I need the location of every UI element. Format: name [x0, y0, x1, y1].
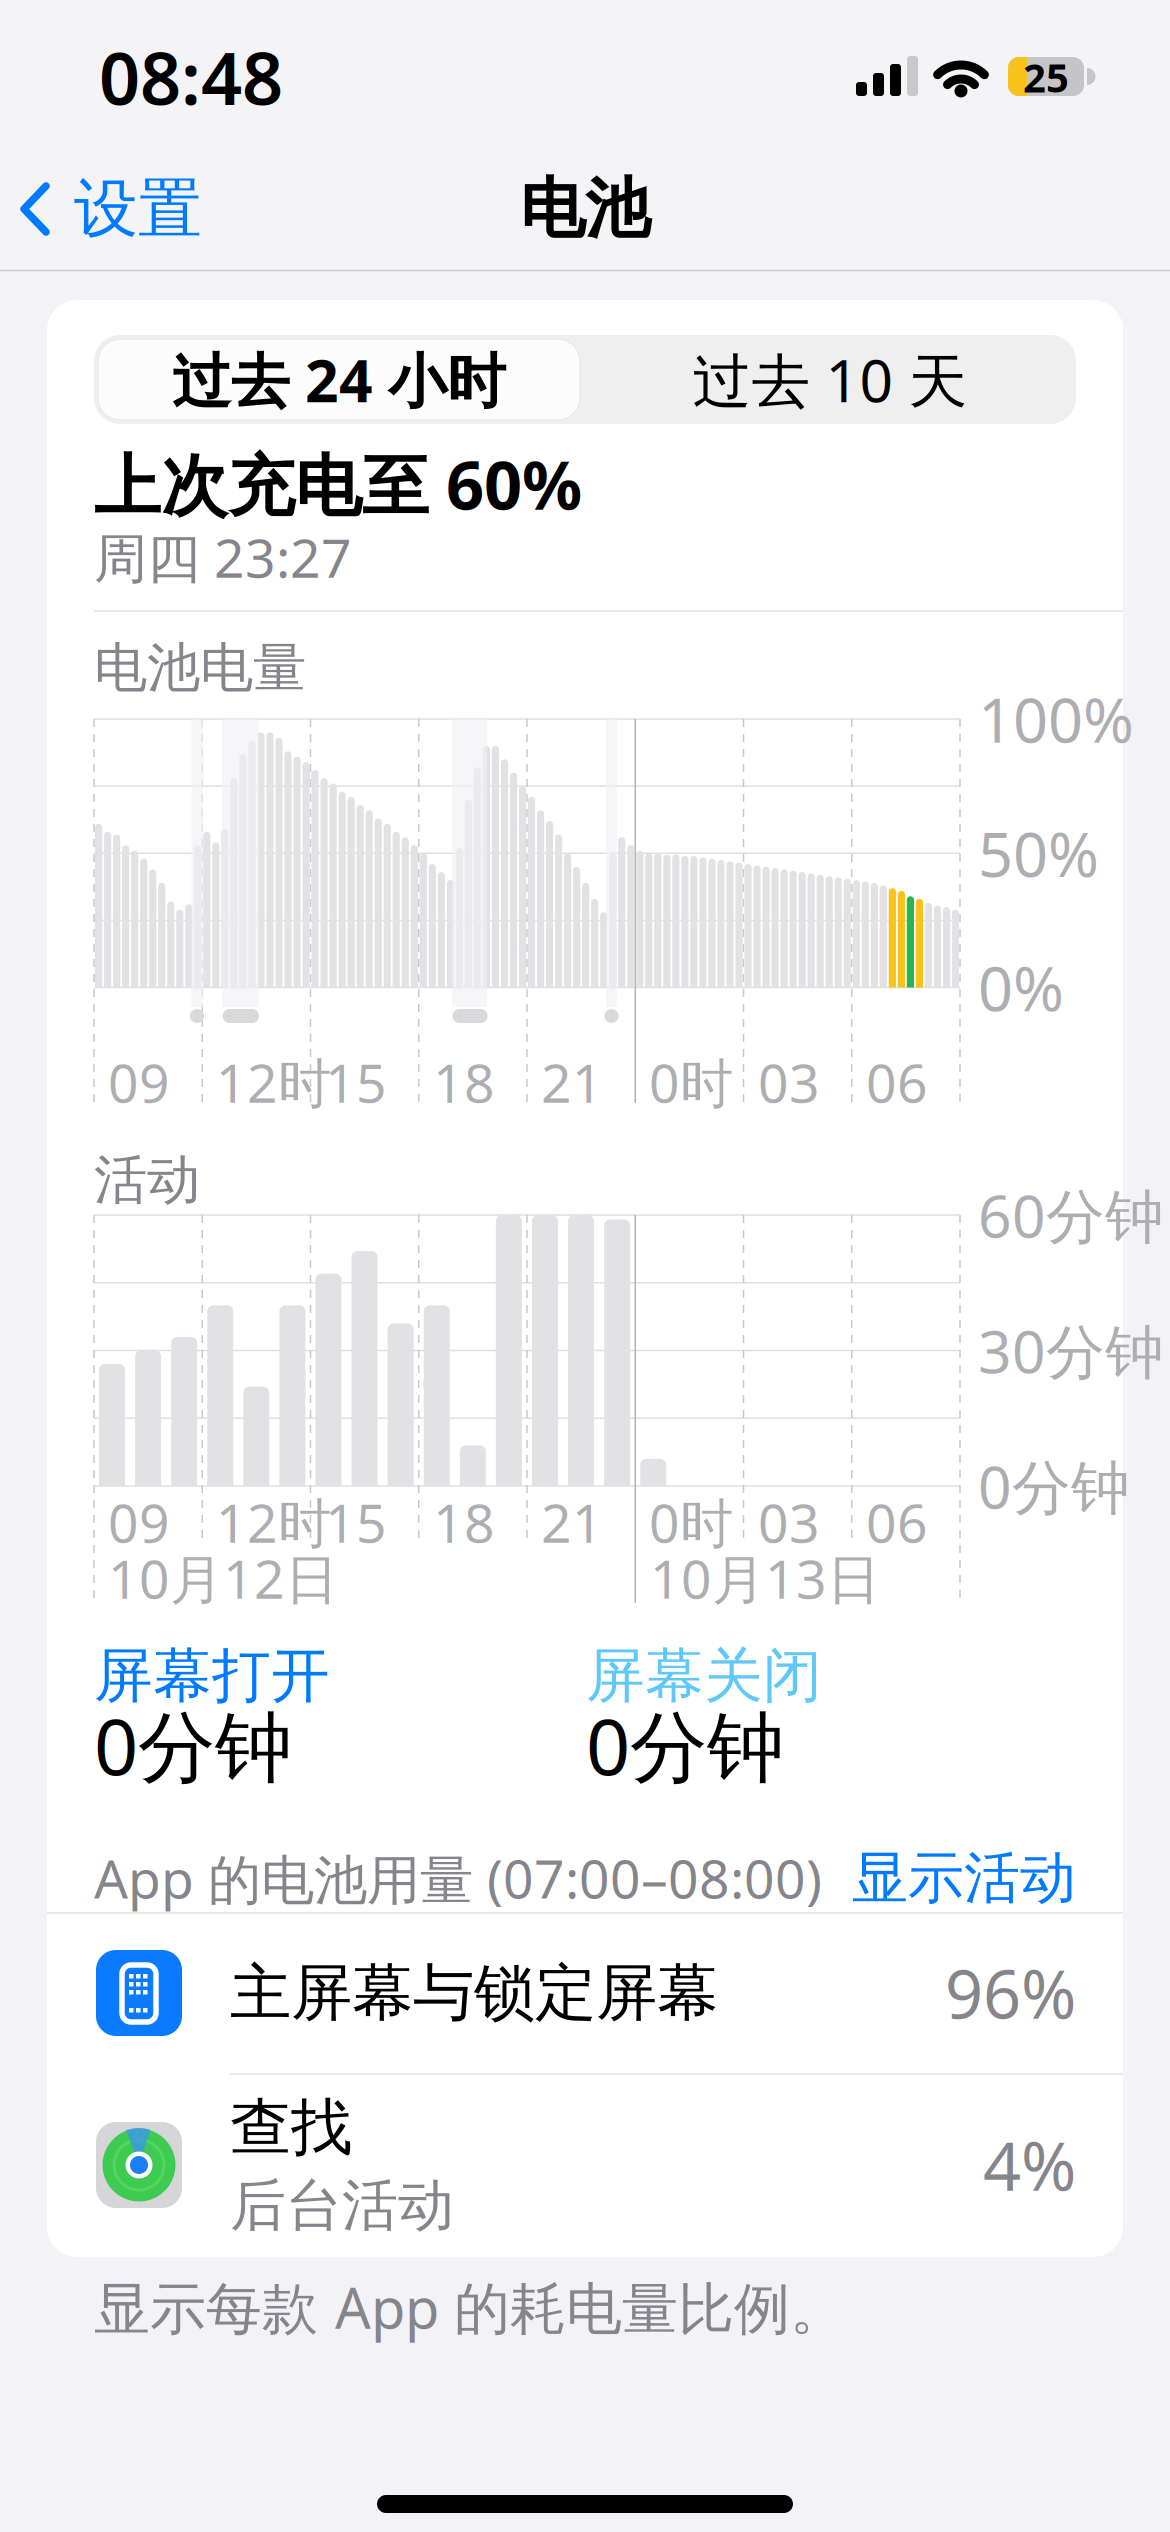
button[interactable]: 主屏幕与锁定屏幕 — [47, 1913, 1123, 2073]
staticText: 4% — [983, 2121, 1076, 2209]
staticText: 15 — [325, 1487, 387, 1557]
staticText: 0分钟 — [586, 1694, 784, 1796]
staticText: 显示活动 — [852, 1844, 1076, 1912]
staticText: 过去 24 小时 — [172, 340, 506, 418]
staticText: 电池电量 — [94, 635, 306, 701]
staticText: 屏幕打开 — [94, 1640, 330, 1712]
staticText: 活动 — [94, 1147, 200, 1213]
button[interactable]: 显示活动 — [796, 1848, 1076, 1908]
staticText: 后台活动 — [230, 2171, 454, 2240]
staticText: 08:48 — [99, 29, 283, 125]
staticText: 12时 — [216, 1047, 331, 1117]
staticText: App 的电池用量 (07:00–08:00) — [94, 1842, 822, 1914]
staticText: 30分钟 — [978, 1311, 1164, 1389]
button[interactable]: 查找 — [47, 2074, 1123, 2256]
staticText: 0分钟 — [94, 1694, 292, 1796]
staticText: 查找 — [230, 2090, 352, 2165]
staticText: 主屏幕与锁定屏幕 — [230, 1955, 718, 2031]
staticText: 上次充电至 60% — [94, 440, 582, 528]
staticText: 设置 — [74, 170, 202, 248]
staticText: 12时 — [216, 1487, 331, 1557]
staticText: 显示每款 App 的耗电量比例。 — [94, 2270, 846, 2344]
staticText: 18 — [433, 1487, 495, 1557]
staticText: 21 — [541, 1047, 603, 1117]
staticText: 10月13日 — [650, 1543, 880, 1613]
staticText: 09 — [108, 1047, 170, 1117]
staticText: 06 — [866, 1487, 928, 1557]
staticText: 25 — [1023, 50, 1069, 103]
button[interactable]: 过去 24 小时 — [98, 339, 580, 420]
staticText: 03 — [758, 1047, 820, 1117]
staticText: 06 — [866, 1047, 928, 1117]
staticText: 10月12日 — [108, 1543, 338, 1613]
staticText: 50% — [978, 812, 1099, 894]
button[interactable]: 设置 — [20, 170, 202, 248]
staticText: 21 — [541, 1487, 603, 1557]
staticText: 屏幕关闭 — [586, 1640, 822, 1712]
staticText: 60分钟 — [978, 1176, 1164, 1254]
staticText: 周四 23:27 — [94, 522, 352, 592]
staticText: 0% — [978, 947, 1064, 1028]
staticText: 09 — [108, 1487, 170, 1557]
staticText: 18 — [433, 1047, 495, 1117]
staticText: 过去 10 天 — [692, 340, 967, 418]
staticText: 96% — [945, 1949, 1076, 2037]
button[interactable]: 过去 10 天 — [590, 339, 1070, 420]
staticText: 100% — [978, 678, 1134, 760]
staticText: 电池 — [520, 169, 650, 249]
staticText: 0时 — [649, 1047, 733, 1117]
staticText: 15 — [325, 1047, 387, 1117]
staticText: 0时 — [649, 1487, 733, 1557]
staticText: 0分钟 — [978, 1447, 1130, 1525]
staticText: 03 — [758, 1487, 820, 1557]
